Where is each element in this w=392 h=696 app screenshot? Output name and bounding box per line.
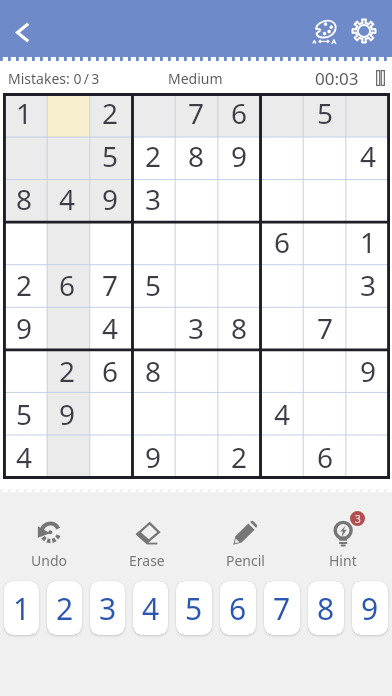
- button[interactable]: [132, 221, 175, 264]
- button[interactable]: 5: [3, 393, 46, 436]
- button[interactable]: 4: [46, 178, 89, 221]
- button[interactable]: [261, 135, 304, 178]
- button[interactable]: 9: [352, 581, 388, 635]
- button[interactable]: [304, 393, 347, 436]
- button[interactable]: Erase: [98, 516, 196, 578]
- button[interactable]: 8: [308, 581, 344, 635]
- button[interactable]: [261, 307, 304, 350]
- button[interactable]: [261, 350, 304, 393]
- button[interactable]: 7: [304, 307, 347, 350]
- button[interactable]: [89, 436, 132, 479]
- button[interactable]: [218, 264, 261, 307]
- staticText: 8: [231, 309, 248, 347]
- button[interactable]: [304, 221, 347, 264]
- button[interactable]: [218, 393, 261, 436]
- button[interactable]: [3, 135, 46, 178]
- button[interactable]: [347, 93, 390, 135]
- button[interactable]: 4: [347, 135, 390, 178]
- button[interactable]: 4: [3, 436, 46, 479]
- button[interactable]: [46, 135, 89, 178]
- button[interactable]: [3, 350, 46, 393]
- button[interactable]: [89, 393, 132, 436]
- button[interactable]: 2: [47, 581, 82, 635]
- button[interactable]: [175, 350, 218, 393]
- button[interactable]: 4: [89, 307, 132, 350]
- button[interactable]: [347, 178, 390, 221]
- button[interactable]: [175, 436, 218, 479]
- button[interactable]: 4: [261, 393, 304, 436]
- button[interactable]: Back: [0, 10, 44, 54]
- button[interactable]: [46, 221, 89, 264]
- button[interactable]: [304, 135, 347, 178]
- button[interactable]: [89, 221, 132, 264]
- button[interactable]: [261, 178, 304, 221]
- button[interactable]: 9: [132, 436, 175, 479]
- button[interactable]: Pencil: [196, 516, 294, 578]
- button[interactable]: 6: [220, 581, 256, 635]
- button[interactable]: 2: [3, 264, 46, 307]
- button[interactable]: 3: [347, 264, 390, 307]
- staticText: 5: [102, 137, 119, 175]
- button[interactable]: 9: [347, 350, 390, 393]
- button[interactable]: 8: [218, 307, 261, 350]
- button[interactable]: 9: [3, 307, 46, 350]
- button[interactable]: [46, 93, 89, 135]
- button[interactable]: 7: [89, 264, 132, 307]
- button[interactable]: 5: [89, 135, 132, 178]
- button[interactable]: 6: [89, 350, 132, 393]
- button[interactable]: 2: [89, 93, 132, 135]
- button[interactable]: [304, 350, 347, 393]
- button[interactable]: 1: [4, 581, 39, 635]
- button[interactable]: 3: [90, 581, 125, 635]
- button[interactable]: [175, 393, 218, 436]
- button[interactable]: 6: [261, 221, 304, 264]
- button[interactable]: [261, 436, 304, 479]
- button[interactable]: [46, 307, 89, 350]
- button[interactable]: 7: [175, 93, 218, 135]
- button[interactable]: 5: [132, 264, 175, 307]
- button[interactable]: [347, 307, 390, 350]
- button[interactable]: [132, 307, 175, 350]
- button[interactable]: 3: [132, 178, 175, 221]
- button[interactable]: 8: [132, 350, 175, 393]
- button[interactable]: 1: [3, 93, 46, 135]
- button[interactable]: 9: [218, 135, 261, 178]
- button[interactable]: [261, 93, 304, 135]
- button[interactable]: 8: [3, 178, 46, 221]
- button[interactable]: Theme: [302, 9, 346, 53]
- button[interactable]: 5: [176, 581, 212, 635]
- button[interactable]: 3: [294, 516, 392, 578]
- button[interactable]: 3: [175, 307, 218, 350]
- button[interactable]: 9: [89, 178, 132, 221]
- button[interactable]: [175, 178, 218, 221]
- button[interactable]: [175, 264, 218, 307]
- button[interactable]: [175, 221, 218, 264]
- button[interactable]: [304, 264, 347, 307]
- button[interactable]: [347, 436, 390, 479]
- button[interactable]: [3, 221, 46, 264]
- button[interactable]: [347, 393, 390, 436]
- button[interactable]: 2: [218, 436, 261, 479]
- button[interactable]: 7: [264, 581, 300, 635]
- button[interactable]: [46, 436, 89, 479]
- button[interactable]: [218, 178, 261, 221]
- button[interactable]: [261, 264, 304, 307]
- button[interactable]: [132, 93, 175, 135]
- button[interactable]: 9: [46, 393, 89, 436]
- button[interactable]: Pause: [369, 67, 391, 89]
- button[interactable]: 1: [347, 221, 390, 264]
- button[interactable]: 2: [46, 350, 89, 393]
- button[interactable]: 6: [304, 436, 347, 479]
- button[interactable]: Settings: [342, 9, 386, 53]
- button[interactable]: [218, 350, 261, 393]
- button[interactable]: 4: [133, 581, 168, 635]
- button[interactable]: 6: [46, 264, 89, 307]
- button[interactable]: 8: [175, 135, 218, 178]
- button[interactable]: 5: [304, 93, 347, 135]
- button[interactable]: [218, 221, 261, 264]
- button[interactable]: [304, 178, 347, 221]
- button[interactable]: 6: [218, 93, 261, 135]
- button[interactable]: Undo: [0, 516, 98, 578]
- button[interactable]: [132, 393, 175, 436]
- button[interactable]: 2: [132, 135, 175, 178]
